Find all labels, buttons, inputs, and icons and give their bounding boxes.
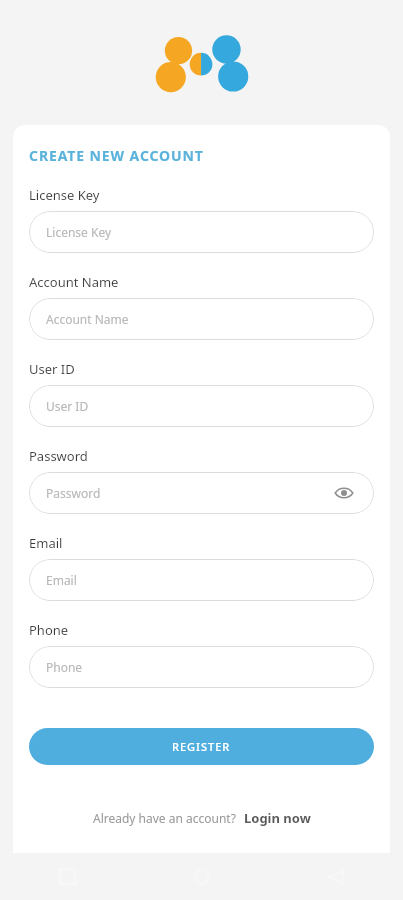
button[interactable]: Account Name [29,298,374,340]
staticText: Email [46,572,77,588]
staticText: Password [46,485,101,501]
staticText: Password [29,447,88,465]
staticText: Email [29,534,63,552]
button[interactable]: Password [29,472,374,514]
staticText: User ID [46,398,89,414]
button[interactable]: User ID [29,385,374,427]
button[interactable]: Toggle password visibility [331,480,357,506]
staticText: Already have an account? [93,810,236,826]
button[interactable]: Already have an account? [29,809,374,827]
button[interactable]: License Key [29,211,374,253]
staticText: Phone [29,621,69,639]
staticText: Phone [46,659,83,675]
button[interactable]: Email [29,559,374,601]
staticText: Account Name [29,273,119,291]
staticText: User ID [29,360,75,378]
staticText: REGISTER [172,739,231,754]
button[interactable]: Phone [29,646,374,688]
staticText: CREATE NEW ACCOUNT [29,146,204,165]
staticText: License Key [46,224,112,240]
button[interactable]: REGISTER [29,728,374,765]
staticText: Account Name [46,311,129,327]
staticText: License Key [29,186,100,204]
staticText: Login now [244,809,311,827]
